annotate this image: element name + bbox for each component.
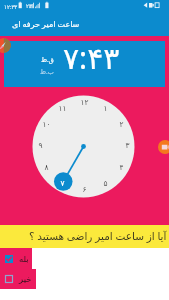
staticText: ۳	[125, 141, 130, 150]
button[interactable]: ۹	[32, 139, 48, 151]
button[interactable]: خیر	[0, 269, 36, 289]
staticText: ۵	[103, 179, 108, 188]
staticText: ۶	[82, 185, 87, 194]
button[interactable]: ۳	[119, 139, 135, 151]
staticText: ۹	[38, 141, 43, 150]
button[interactable]: ۵	[97, 177, 113, 189]
button[interactable]: ۱	[97, 102, 113, 114]
staticText: ۴	[119, 163, 124, 172]
staticText: ۲۳	[26, 3, 32, 9]
staticText: ۱۲	[80, 98, 89, 107]
staticText: ۱۰	[42, 120, 51, 129]
button[interactable]: ۱۰	[38, 118, 54, 130]
staticText: ۱۲:۳۳	[4, 3, 18, 10]
button[interactable]: ۱۱	[54, 102, 70, 114]
staticText: ۱۱	[58, 104, 67, 113]
button[interactable]: بله	[0, 248, 32, 269]
staticText: بله	[19, 254, 29, 264]
staticText: ۷	[60, 179, 65, 188]
button[interactable]: Video call	[158, 140, 169, 154]
staticText: ۲	[119, 120, 124, 129]
button[interactable]: ۷	[54, 177, 70, 189]
button[interactable]: ۷:۴۳	[63, 37, 120, 78]
staticText: خیر	[19, 274, 32, 284]
button[interactable]: ۸	[38, 161, 54, 173]
button[interactable]: ۶	[76, 183, 92, 195]
button[interactable]: ۴	[113, 161, 129, 173]
button[interactable]: آیا از ساعت امیر راضی هستید ؟	[29, 229, 167, 243]
button[interactable]: Navigation	[0, 38, 11, 53]
staticText: ق.ظ	[41, 55, 54, 64]
button[interactable]: ۲	[113, 118, 129, 130]
staticText: ب.ظ	[40, 67, 54, 76]
button[interactable]: ق.ظ	[40, 55, 54, 76]
button[interactable]: ساعت امیر حرفه ای	[12, 18, 80, 29]
staticText: ۱	[103, 104, 108, 113]
staticText: ۸	[44, 163, 49, 172]
button[interactable]: ۱۲	[76, 96, 92, 108]
